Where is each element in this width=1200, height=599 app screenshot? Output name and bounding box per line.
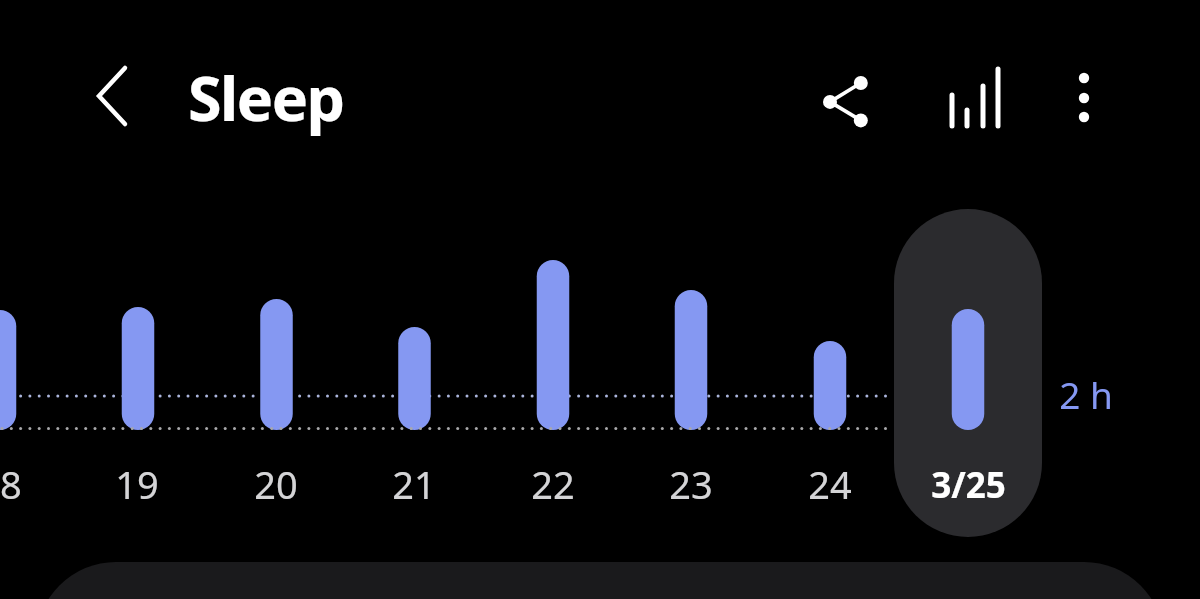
staticText: 3/25	[931, 461, 1006, 509]
staticText: 21	[392, 458, 436, 510]
button[interactable]	[1062, 62, 1106, 132]
button[interactable]	[938, 62, 1008, 132]
staticText: 18	[0, 458, 22, 510]
button[interactable]	[812, 62, 880, 132]
staticText: Sleep	[188, 56, 344, 139]
staticText: 24	[808, 458, 852, 510]
staticText: 19	[115, 458, 159, 510]
button[interactable]	[894, 209, 1042, 537]
staticText: 2 h	[1059, 369, 1113, 419]
staticText: 22	[531, 458, 575, 510]
staticText: 23	[669, 458, 713, 510]
staticText: 20	[254, 458, 298, 510]
button[interactable]	[36, 562, 1164, 599]
button[interactable]	[80, 58, 144, 134]
